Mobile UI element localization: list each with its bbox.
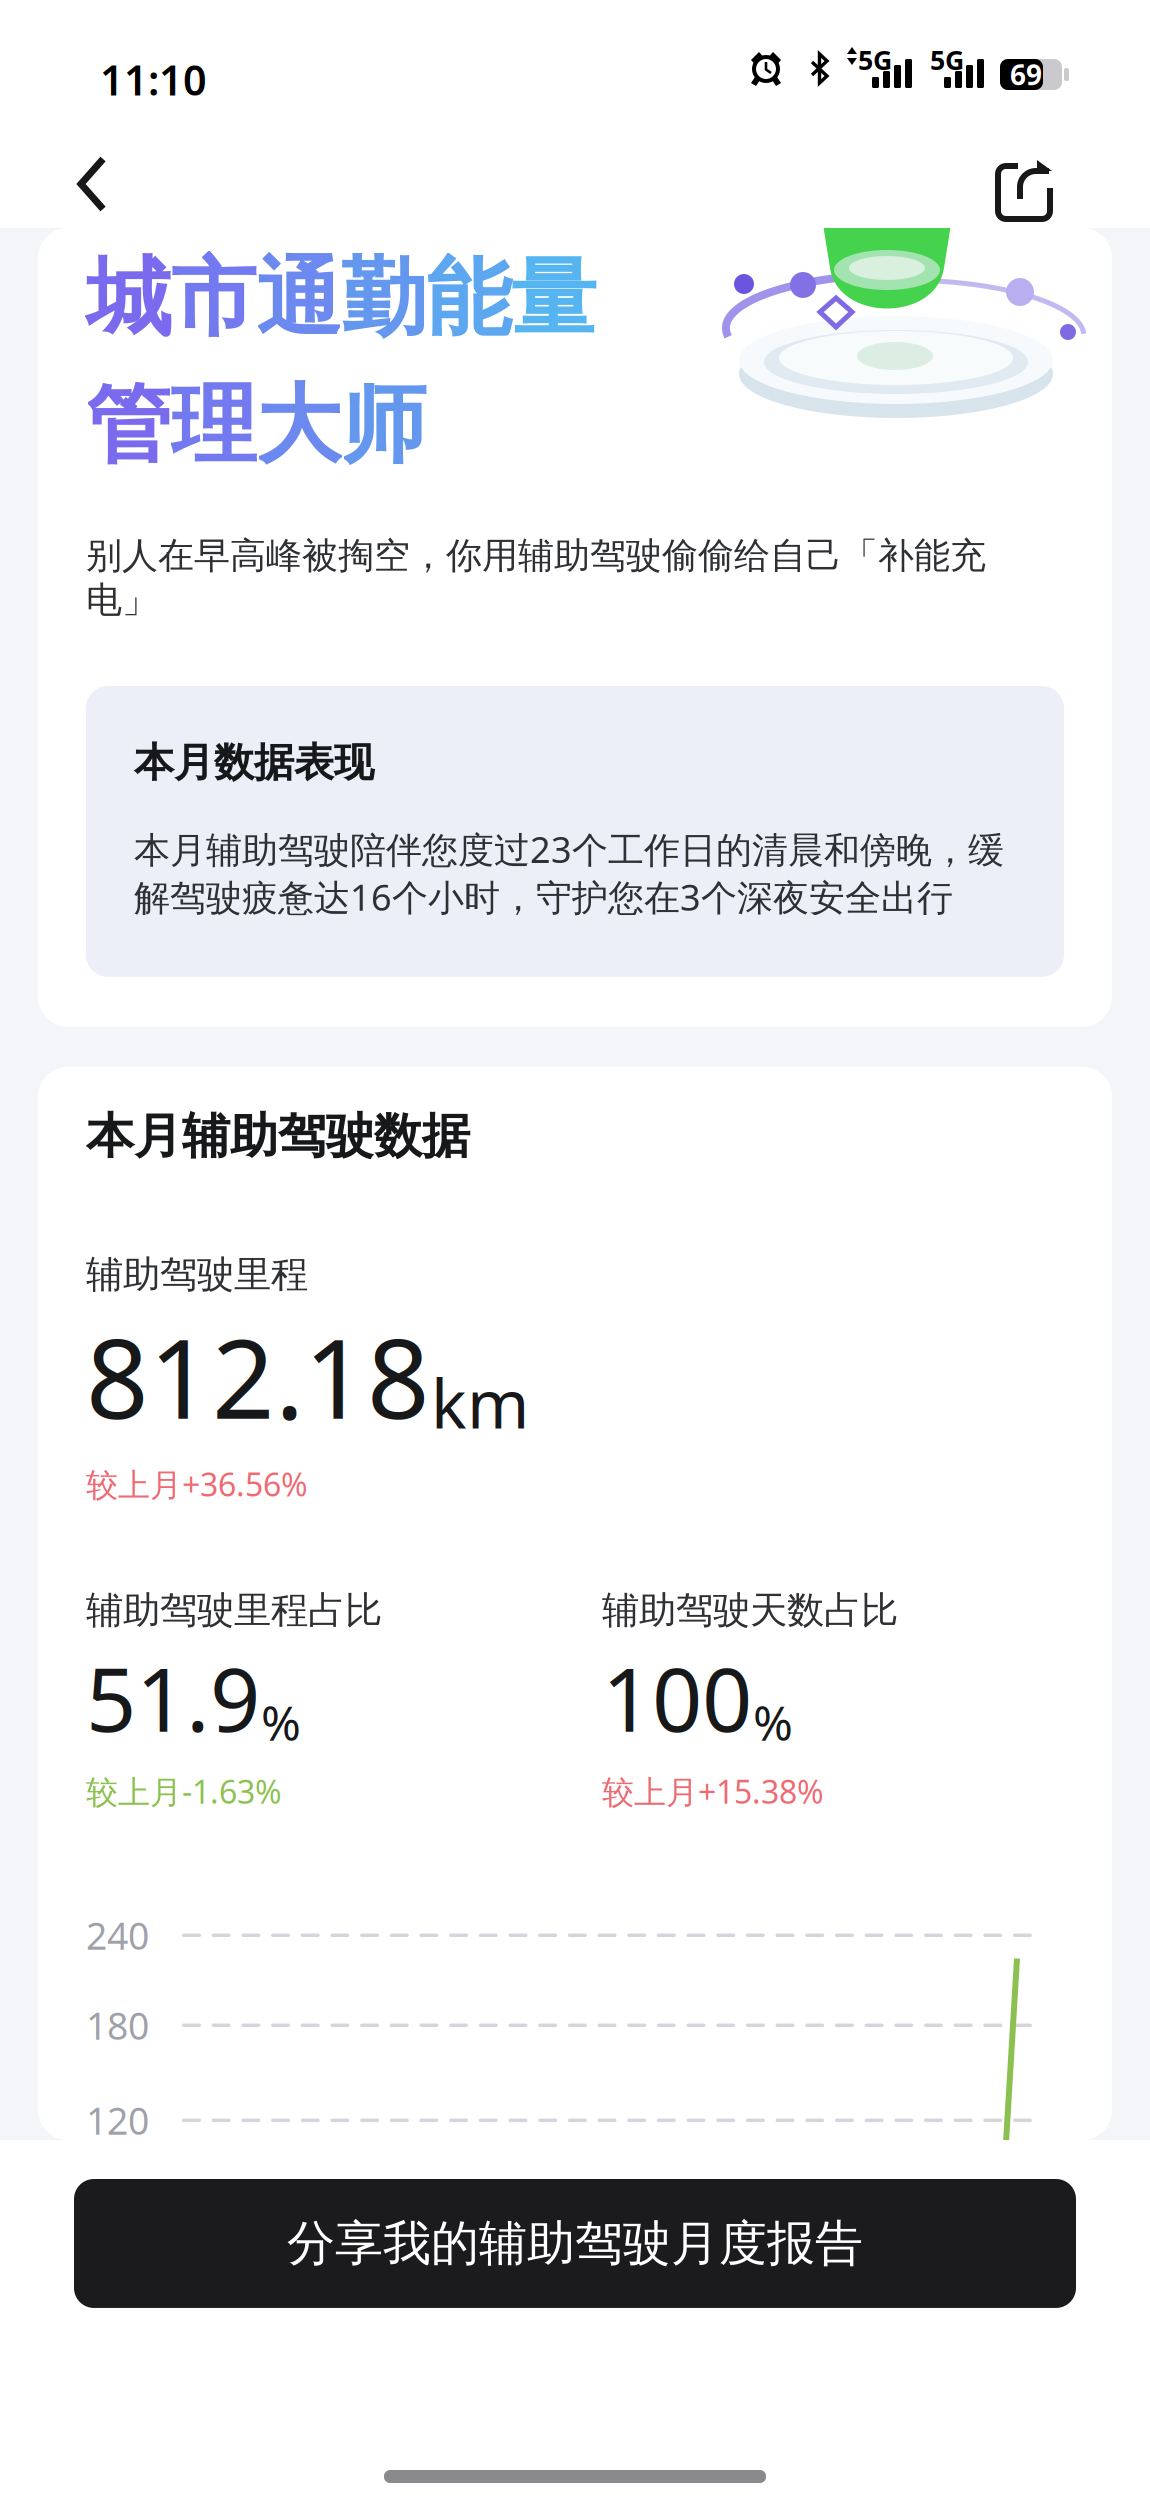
staticText: 辅助驾驶天数占比 [602, 1587, 898, 1633]
staticText: 812.18 [86, 1304, 430, 1449]
staticText: 管 [86, 373, 171, 478]
staticText: 勤 [341, 246, 426, 351]
staticText: 较上月+36.56% [86, 1463, 308, 1505]
staticText: 理 [171, 373, 256, 478]
staticText: 100 [602, 1639, 752, 1756]
staticText: 本月辅助驾驶陪伴您度过23个工作日的清晨和傍晚，缓解驾驶疲惫达16个小时，守护您… [134, 825, 1004, 921]
staticText: 较上月+15.38% [602, 1770, 824, 1812]
staticText: 本月辅助驾驶数据 [86, 1107, 470, 1166]
staticText: 180 [86, 2000, 149, 2050]
staticText: 师 [341, 373, 426, 478]
staticText: 市 [171, 246, 256, 351]
staticText: 本月数据表现 [134, 738, 374, 787]
staticText: 城 [86, 246, 171, 351]
staticText: % [261, 1690, 301, 1754]
staticText: 分享我的辅助驾驶月度报告 [287, 2214, 863, 2273]
staticText: 能 [426, 246, 511, 351]
staticText: 5G [930, 42, 964, 77]
staticText: 大 [256, 373, 341, 478]
staticText: 通 [256, 246, 341, 351]
staticText: 240 [86, 1910, 149, 1960]
staticText: km [431, 1358, 529, 1447]
staticText: 辅助驾驶里程占比 [86, 1587, 382, 1633]
staticText: 辅助驾驶里程 [86, 1252, 308, 1298]
button[interactable]: Back [0, 140, 144, 228]
staticText: 69 [1010, 56, 1042, 93]
staticText: 120 [86, 2095, 149, 2145]
staticText: 5G [858, 42, 892, 77]
button[interactable]: 分享我的辅助驾驶月度报告 [74, 2179, 1076, 2308]
button[interactable]: Share [958, 140, 1150, 228]
staticText: 别人在早高峰被掏空，你用辅助驾驶偷偷给自己「补能充电」 [86, 534, 986, 622]
staticText: % [753, 1690, 793, 1754]
staticText: 较上月-1.63% [86, 1770, 282, 1812]
staticText: 51.9 [86, 1639, 260, 1756]
staticText: 11:10 [100, 52, 207, 107]
staticText: 量 [511, 246, 596, 351]
